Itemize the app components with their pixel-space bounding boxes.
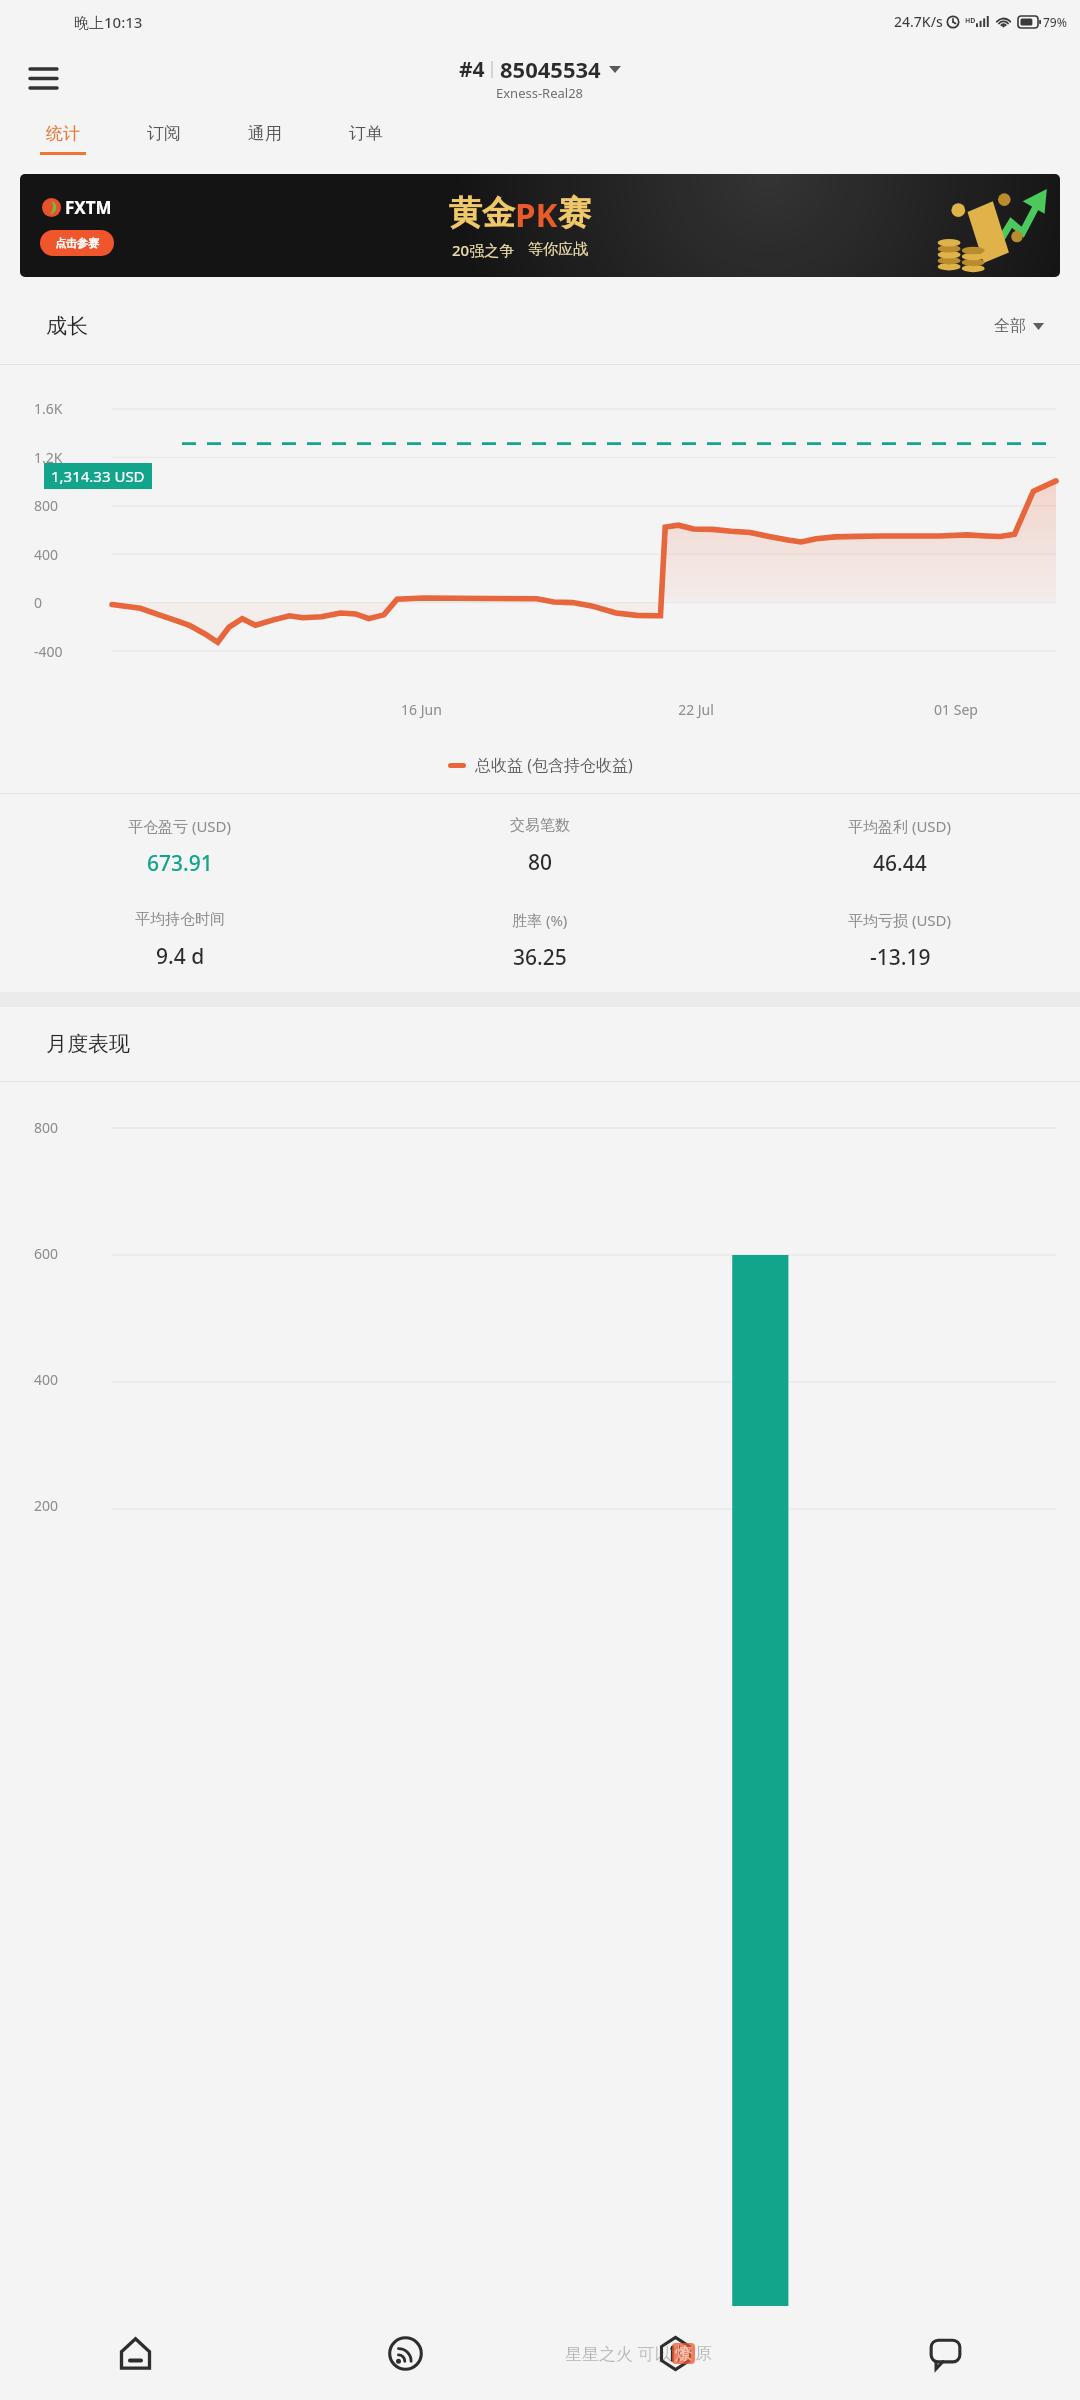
staticText: 16 Jun xyxy=(283,700,560,719)
staticText: 月度表现 xyxy=(46,1031,130,1057)
staticText: 燎 xyxy=(675,2343,692,2364)
staticText: #4 xyxy=(459,55,485,84)
button[interactable]: Trade xyxy=(540,2306,810,2400)
staticText: 36.25 xyxy=(513,943,567,972)
button[interactable]: 通用 xyxy=(214,113,315,165)
staticText: 20强之争 xyxy=(452,240,515,260)
staticText: 1.6K xyxy=(34,399,63,418)
staticText: 80 xyxy=(528,848,553,877)
staticText: -13.19 xyxy=(870,943,931,972)
staticText: 200 xyxy=(34,1496,59,1515)
staticText: 600 xyxy=(34,1244,59,1263)
staticText: 0 xyxy=(34,593,43,612)
button[interactable]: Signals xyxy=(270,2306,540,2400)
staticText: 24.7K/s xyxy=(894,12,943,31)
staticText: 点击参赛 xyxy=(55,236,99,250)
staticText: 等你应战 xyxy=(528,240,588,259)
staticText: 统计 xyxy=(46,123,80,144)
staticText: 交易笔数 xyxy=(510,816,570,835)
staticText: 订单 xyxy=(349,123,383,144)
staticText: 1,314.33 USD xyxy=(51,466,145,486)
staticText: -400 xyxy=(34,642,63,661)
staticText: 800 xyxy=(34,1118,59,1137)
staticText: FXTM xyxy=(65,196,112,219)
staticText: 黄金 xyxy=(449,192,515,234)
staticText: 平仓盈亏 (USD) xyxy=(128,816,232,836)
button[interactable]: Chat xyxy=(810,2306,1080,2400)
button[interactable]: 订单 xyxy=(315,113,416,165)
staticText: 通用 xyxy=(248,123,282,144)
staticText: 平均亏损 (USD) xyxy=(848,910,952,930)
staticText: 平均盈利 (USD) xyxy=(848,816,952,836)
staticText: 01 Sep xyxy=(832,700,1080,719)
staticText: 总收益 (包含持仓收益) xyxy=(475,754,633,776)
staticText: 全部 xyxy=(994,316,1026,336)
staticText: 平均持仓时间 xyxy=(135,910,225,929)
button[interactable]: 统计 xyxy=(12,113,113,165)
staticText: 85045534 xyxy=(500,54,601,84)
staticText: 胜率 (%) xyxy=(512,910,568,930)
staticText: 赛 xyxy=(558,192,591,234)
staticText: 9.4 d xyxy=(156,942,205,971)
button[interactable]: 订阅 xyxy=(113,113,214,165)
button[interactable]: #4 xyxy=(459,54,621,102)
staticText: 400 xyxy=(34,1370,59,1389)
staticText: PK xyxy=(515,192,558,237)
staticText: 22 Jul xyxy=(560,700,832,719)
button[interactable]: Home xyxy=(0,2306,270,2400)
button[interactable]: FXTM xyxy=(20,174,1060,277)
staticText: 800 xyxy=(34,496,59,515)
staticText: 1.2K xyxy=(34,448,63,467)
staticText: 成长 xyxy=(46,313,88,339)
staticText: Exness-Real28 xyxy=(496,84,584,102)
staticText: 晚上10:13 xyxy=(74,12,143,32)
staticText: 673.91 xyxy=(147,849,213,878)
staticText: 原 xyxy=(695,2343,712,2364)
button[interactable]: Menu xyxy=(18,53,68,103)
staticText: 46.44 xyxy=(873,849,927,878)
staticText: 星星之火 可以 xyxy=(565,2342,672,2365)
staticText: 订阅 xyxy=(147,123,181,144)
staticText: 79% xyxy=(1043,14,1067,30)
button[interactable]: 全部 xyxy=(994,316,1044,336)
staticText: 400 xyxy=(34,545,59,564)
staticText: HD xyxy=(965,16,976,26)
button[interactable]: 点击参赛 xyxy=(55,236,99,250)
